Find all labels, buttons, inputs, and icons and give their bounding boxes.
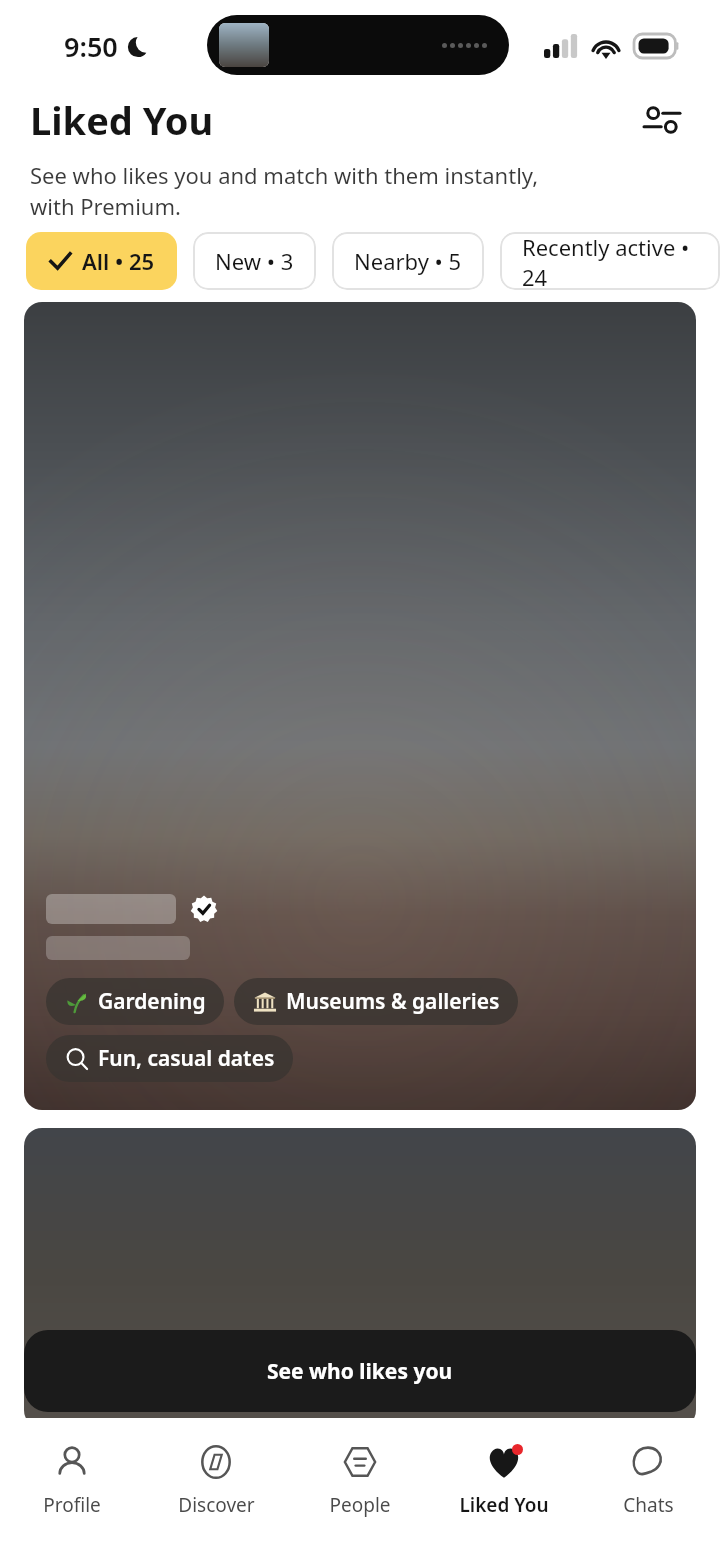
- staticText: Liked You: [459, 1492, 549, 1518]
- button[interactable]: People: [288, 1418, 432, 1564]
- button[interactable]: Filters: [634, 92, 690, 148]
- staticText: Profile: [43, 1492, 101, 1518]
- button[interactable]: Fun, casual dates: [46, 1035, 293, 1082]
- staticText: New • 3: [215, 246, 294, 276]
- button[interactable]: Liked You: [432, 1418, 576, 1564]
- button[interactable]: Discover: [144, 1418, 288, 1564]
- staticText: Chats: [623, 1492, 674, 1518]
- button[interactable]: Gardening: [24, 302, 696, 1110]
- button[interactable]: All • 25: [26, 232, 177, 290]
- staticText: Discover: [178, 1492, 255, 1518]
- staticText: Gardening: [98, 987, 206, 1016]
- button[interactable]: Gardening: [46, 978, 224, 1025]
- button[interactable]: See who likes you: [24, 1330, 696, 1412]
- button[interactable]: Nearby • 5: [332, 232, 484, 290]
- staticText: See who likes you: [267, 1357, 453, 1386]
- staticText: Nearby • 5: [354, 246, 462, 276]
- button[interactable]: Recently active • 24: [500, 232, 720, 290]
- staticText: Museums & galleries: [286, 987, 500, 1016]
- staticText: Recently active • 24: [522, 232, 698, 290]
- staticText: Liked You: [30, 94, 634, 146]
- staticText: See who likes you and match with them in…: [30, 160, 539, 222]
- button[interactable]: Chats: [576, 1418, 720, 1564]
- button[interactable]: Museums & galleries: [234, 978, 518, 1025]
- staticText: Fun, casual dates: [98, 1044, 275, 1073]
- button[interactable]: New • 3: [193, 232, 316, 290]
- staticText: All • 25: [82, 246, 155, 276]
- button[interactable]: Profile: [0, 1418, 144, 1564]
- button[interactable]: [24, 1128, 696, 1428]
- staticText: People: [329, 1492, 391, 1518]
- staticText: 9:50: [64, 28, 118, 65]
